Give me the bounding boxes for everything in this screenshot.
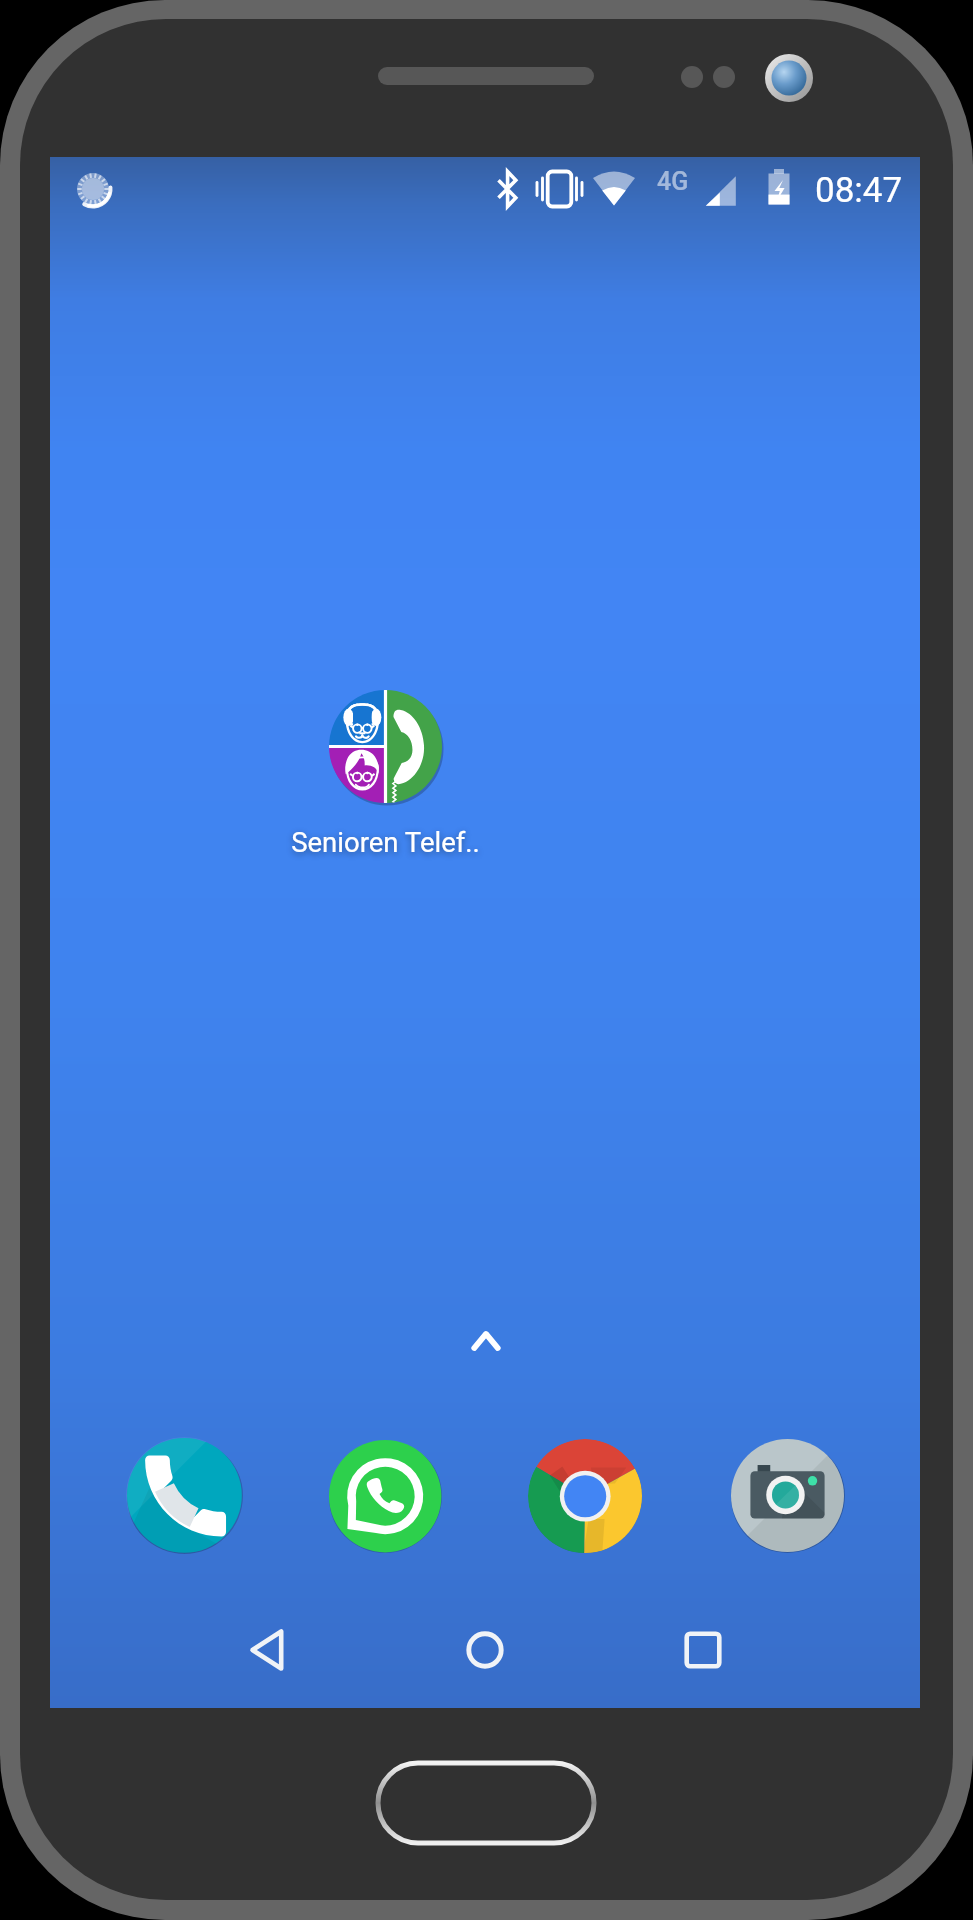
button[interactable]: Open app drawer — [456, 1311, 516, 1371]
button[interactable]: Camera — [730, 1438, 845, 1553]
button[interactable]: Senioren Telef.. — [275, 685, 495, 855]
staticText: 08:47 — [815, 170, 903, 211]
staticText: 4G — [657, 167, 689, 196]
button[interactable]: Phone — [126, 1437, 243, 1554]
button[interactable]: Back — [233, 1615, 303, 1685]
button[interactable]: Chrome — [528, 1439, 642, 1553]
button[interactable]: Home — [450, 1615, 520, 1685]
staticText: Senioren Telef.. — [291, 826, 480, 858]
button[interactable]: Recent apps — [668, 1615, 738, 1685]
button[interactable]: WhatsApp — [328, 1439, 442, 1553]
